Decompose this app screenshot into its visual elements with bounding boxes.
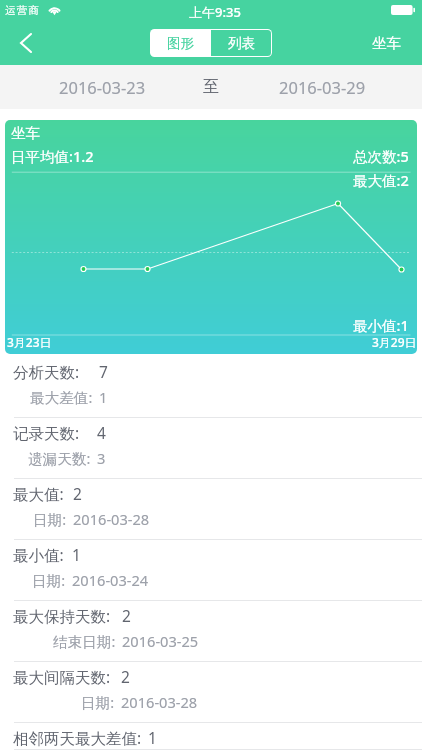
staticText: 分析天数: <box>13 361 80 382</box>
staticText: 遗漏天数: <box>28 448 91 468</box>
staticText: 至 <box>203 77 219 97</box>
staticText: 坐车 <box>11 124 40 142</box>
staticText: 列表 <box>228 35 255 52</box>
staticText: 2016-03-24 <box>72 570 149 590</box>
staticText: 7 <box>99 361 108 382</box>
button[interactable]: 坐车 <box>358 21 422 64</box>
staticText: 3月29日 <box>372 334 417 350</box>
staticText: 最大值:2 <box>353 170 409 190</box>
staticText: 2016-03-28 <box>73 509 150 529</box>
staticText: 1 <box>148 727 157 748</box>
button[interactable]: 最大保持天数: <box>0 601 422 662</box>
button[interactable]: 最大值: <box>0 479 422 540</box>
staticText: 运营商 <box>5 4 41 17</box>
staticText: 2 <box>122 605 131 626</box>
staticText: 2016-03-25 <box>122 631 199 651</box>
button[interactable]: 列表 <box>211 30 271 56</box>
button[interactable]: 相邻两天最大差值: <box>0 723 422 750</box>
button[interactable]: 记录天数: <box>0 418 422 479</box>
button[interactable]: 2016-03-29 <box>222 65 422 109</box>
button[interactable]: Back <box>0 21 48 64</box>
staticText: 日平均值:1.2 <box>11 146 94 166</box>
staticText: 总次数:5 <box>353 146 409 166</box>
staticText: 1 <box>72 544 81 565</box>
staticText: 3月23日 <box>7 334 52 350</box>
staticText: 最小值: <box>13 544 64 565</box>
staticText: 最大保持天数: <box>13 605 111 626</box>
staticText: 2016-03-28 <box>121 692 198 712</box>
button[interactable]: 分析天数: <box>0 357 422 418</box>
button[interactable]: 图形 <box>150 29 211 57</box>
staticText: 日期: <box>81 692 115 712</box>
staticText: 最大间隔天数: <box>13 666 111 687</box>
staticText: 2 <box>73 483 82 504</box>
staticText: 2 <box>121 666 130 687</box>
staticText: 最大值: <box>13 483 64 504</box>
staticText: 2016-03-23 <box>59 76 146 98</box>
staticText: 记录天数: <box>13 422 80 443</box>
button[interactable]: 最大间隔天数: <box>0 662 422 723</box>
staticText: 上午9:35 <box>189 3 241 21</box>
staticText: 日期: <box>32 570 66 590</box>
staticText: 2016-03-29 <box>279 76 366 98</box>
button[interactable]: 最小值: <box>0 540 422 601</box>
staticText: 最大差值: <box>30 387 93 407</box>
staticText: 相邻两天最大差值: <box>13 727 142 748</box>
button[interactable]: 坐车 <box>5 120 417 354</box>
staticText: 结束日期: <box>53 631 116 651</box>
staticText: 4 <box>97 422 106 443</box>
staticText: 日期: <box>33 509 67 529</box>
staticText: 1 <box>99 387 108 407</box>
staticText: 图形 <box>167 35 194 52</box>
staticText: 最小值:1 <box>353 315 409 335</box>
staticText: 3 <box>97 448 106 468</box>
staticText: 坐车 <box>372 34 401 52</box>
button[interactable]: 2016-03-23 <box>0 65 200 109</box>
